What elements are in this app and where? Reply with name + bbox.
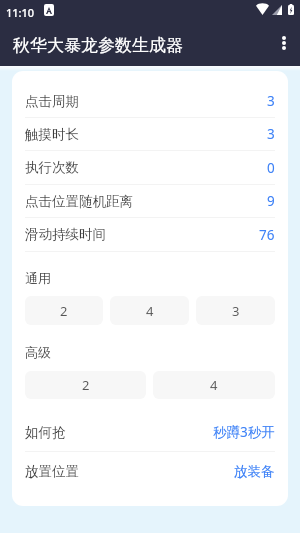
staticText: 3 (267, 92, 275, 110)
staticText: 4 (146, 302, 154, 320)
staticText: 秒蹲3秒开 (213, 423, 275, 441)
button[interactable]: More options (262, 23, 300, 63)
staticText: 3 (232, 302, 240, 320)
button[interactable]: 滑动持续时间 (25, 218, 275, 252)
staticText: 通用 (25, 270, 51, 286)
staticText: 滑动持续时间 (25, 226, 106, 243)
button[interactable]: 触摸时长 (25, 118, 275, 151)
button[interactable]: 点击位置随机距离 (25, 185, 275, 218)
button[interactable]: 3 (196, 296, 275, 325)
staticText: 4 (210, 376, 218, 394)
staticText: 高级 (25, 344, 51, 360)
staticText: 11:10 (6, 5, 35, 20)
staticText: 2 (82, 376, 90, 394)
button[interactable]: 4 (153, 371, 275, 399)
staticText: 点击位置随机距离 (25, 193, 133, 210)
staticText: 触摸时长 (25, 126, 79, 143)
staticText: 点击周期 (25, 93, 79, 110)
staticText: 如何抢 (25, 424, 66, 441)
button[interactable]: 2 (25, 296, 103, 325)
staticText: 秋华大暴龙参数生成器 (13, 35, 183, 56)
button[interactable]: 2 (25, 371, 146, 399)
staticText: 9 (267, 192, 275, 210)
staticText: 2 (60, 302, 68, 320)
button[interactable]: 4 (110, 296, 189, 325)
staticText: 放装备 (234, 463, 275, 480)
staticText: 76 (259, 226, 275, 244)
staticText: 3 (267, 125, 275, 143)
staticText: 0 (267, 159, 275, 177)
staticText: 执行次数 (25, 159, 79, 176)
button[interactable]: 点击周期 (25, 85, 275, 118)
button[interactable]: 如何抢 (25, 413, 275, 452)
button[interactable]: 执行次数 (25, 151, 275, 185)
button[interactable]: 放置位置 (25, 452, 275, 491)
staticText: 放置位置 (25, 463, 79, 480)
